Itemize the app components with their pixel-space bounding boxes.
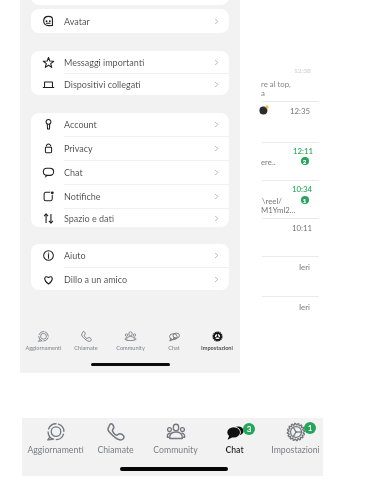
staticText: 2 <box>303 158 307 165</box>
staticText: 12:38 <box>294 67 311 75</box>
staticText: Aggiornamenti <box>25 344 62 351</box>
button[interactable]: Dispositivi collegati <box>31 74 229 95</box>
button[interactable]: Chiamate <box>85 423 145 463</box>
staticText: Privacy <box>64 143 93 154</box>
staticText: 1 <box>308 424 313 433</box>
staticText: Avatar <box>64 16 90 27</box>
button[interactable]: Community <box>108 331 152 355</box>
staticText: 10:11 <box>292 223 313 232</box>
staticText: 12:35 <box>290 106 311 115</box>
button[interactable]: Avatar <box>31 9 229 33</box>
button[interactable]: Chat <box>152 331 196 355</box>
staticText: Aiuto <box>64 250 86 261</box>
staticText: Ieri <box>299 262 310 271</box>
button[interactable]: Spazio e dati <box>31 209 229 227</box>
staticText: \reel/ <box>262 196 282 205</box>
staticText: Spazio e dati <box>64 213 114 224</box>
button[interactable]: Aggiornamenti <box>21 331 65 355</box>
button[interactable]: Privacy <box>31 137 229 160</box>
button[interactable]: Community <box>145 423 205 463</box>
button[interactable]: Chat <box>31 161 229 184</box>
staticText: 10:34 <box>292 184 313 193</box>
staticText: 3 <box>247 425 252 434</box>
staticText: Community <box>116 344 145 351</box>
staticText: Community <box>153 444 198 454</box>
staticText: 12:11 <box>293 146 314 155</box>
button[interactable]: Aggiornamenti <box>25 423 85 463</box>
staticText: M1Yml2... <box>261 205 296 214</box>
staticText: Chat <box>225 444 244 454</box>
staticText: Chiamate <box>97 444 134 454</box>
button[interactable]: Notifiche <box>31 185 229 208</box>
staticText: Messaggi importanti <box>64 57 145 68</box>
staticText: Dispositivi collegati <box>64 79 141 90</box>
button[interactable]: Impostazioni <box>195 331 239 355</box>
staticText: 1 <box>303 197 307 204</box>
staticText: Account <box>64 119 97 130</box>
staticText: a <box>261 88 265 97</box>
button[interactable]: Aiuto <box>31 244 229 267</box>
button[interactable]: 1 <box>265 423 325 463</box>
button[interactable]: 3 <box>204 423 264 463</box>
staticText: Impostazioni <box>271 444 320 454</box>
staticText: Dillo a un amico <box>64 274 128 285</box>
button[interactable]: Messaggi importanti <box>31 51 229 73</box>
staticText: Impostazioni <box>201 344 233 351</box>
button[interactable]: Chiamate <box>64 331 108 355</box>
staticText: re al top, <box>261 79 291 88</box>
staticText: ere.. <box>261 157 276 166</box>
staticText: Aggiornamenti <box>27 444 84 454</box>
staticText: Chat <box>168 344 180 351</box>
staticText: Chiamate <box>74 344 98 351</box>
button[interactable]: Account <box>31 113 229 136</box>
button[interactable]: Dillo a un amico <box>31 268 229 290</box>
staticText: Chat <box>64 167 83 178</box>
staticText: Notifiche <box>64 191 101 202</box>
staticText: Ieri <box>299 302 310 311</box>
